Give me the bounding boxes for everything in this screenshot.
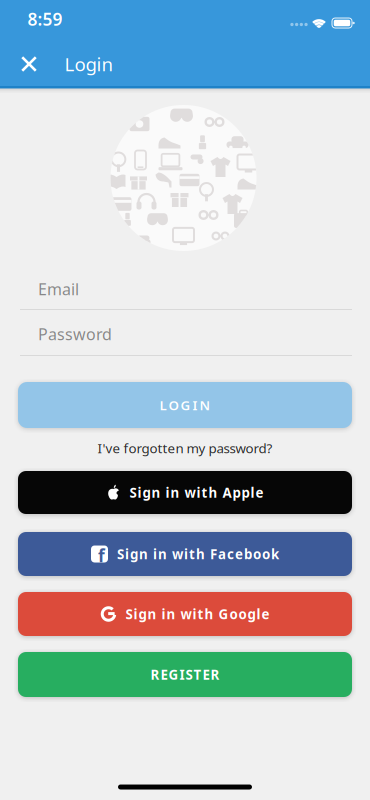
button[interactable]: S i g n i n w i t h A p p l e bbox=[18, 471, 352, 514]
button[interactable]: Password bbox=[18, 315, 352, 353]
staticText: S i g n i n w i t h G o o g l e bbox=[125, 605, 269, 623]
button[interactable]: Close bbox=[12, 47, 46, 81]
button[interactable]: Email bbox=[18, 270, 352, 308]
staticText: 8:59 bbox=[27, 7, 62, 31]
button[interactable]: S i g n i n w i t h G o o g l e bbox=[18, 592, 352, 636]
button[interactable]: f bbox=[18, 532, 352, 576]
staticText: L O G I N bbox=[159, 396, 210, 414]
staticText: R E G I S T E R bbox=[150, 665, 219, 684]
staticText: Login bbox=[64, 52, 113, 76]
button[interactable]: L O G I N bbox=[18, 382, 352, 428]
staticText: f bbox=[98, 544, 105, 567]
staticText: Password bbox=[38, 323, 112, 345]
button[interactable]: R E G I S T E R bbox=[18, 652, 352, 697]
staticText: I've forgotten my password? bbox=[97, 439, 272, 457]
staticText: S i g n i n w i t h F a c e b o o k bbox=[117, 545, 279, 563]
button[interactable]: I've forgotten my password? bbox=[93, 435, 276, 461]
staticText: S i g n i n w i t h A p p l e bbox=[129, 483, 263, 502]
staticText: Email bbox=[38, 278, 79, 300]
